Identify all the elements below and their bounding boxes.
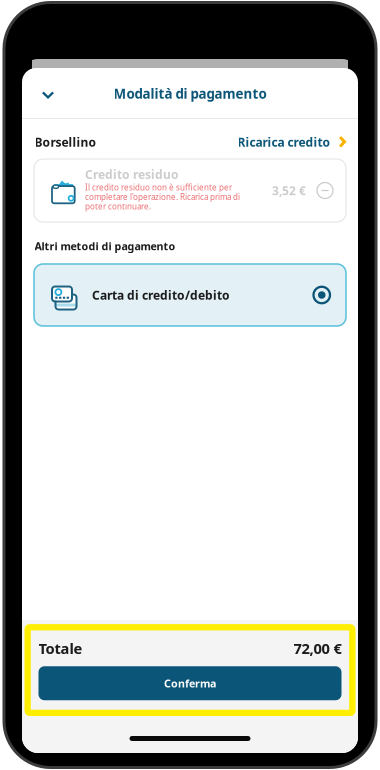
staticText: 72,00 €	[293, 638, 341, 658]
staticText: Il credito residuo non è sufficiente per	[85, 182, 232, 193]
button[interactable]: Ricarica credito	[237, 134, 345, 150]
staticText: Modalità di pagamento	[113, 85, 266, 102]
staticText: completare l'operazione. Ricarica prima …	[85, 192, 240, 202]
staticText: Conferma	[164, 676, 216, 690]
staticText: Carta di credito/debito	[92, 287, 230, 303]
button[interactable]: Carta di credito/debito	[34, 264, 346, 326]
button[interactable]: Chiudi	[30, 77, 66, 113]
staticText: Credito residuo	[85, 166, 179, 182]
button[interactable]: Conferma	[38, 666, 341, 700]
staticText: Altri metodi di pagamento	[34, 239, 175, 253]
staticText: Ricarica credito	[237, 134, 330, 150]
staticText: 3,52 €	[272, 182, 306, 198]
staticText: poter continuare.	[85, 201, 151, 212]
staticText: Borsellino	[34, 134, 96, 150]
staticText: Totale	[38, 638, 82, 658]
